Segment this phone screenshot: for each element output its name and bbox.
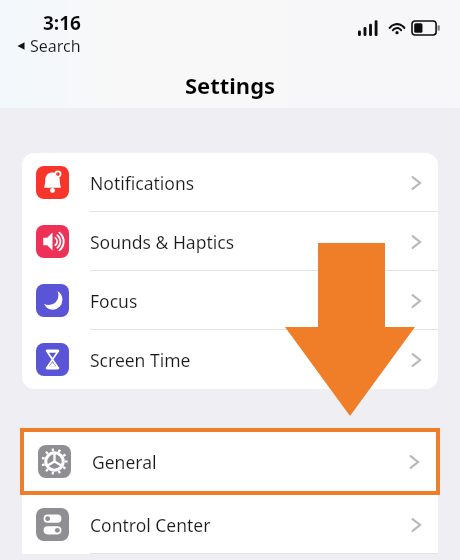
button[interactable]: Sounds & Haptics [22,212,438,271]
button[interactable]: Search [14,34,83,58]
button[interactable]: Notifications [22,153,438,212]
staticText: Control Center [90,513,211,537]
staticText: Sounds & Haptics [90,230,235,254]
button[interactable]: Focus [22,271,438,330]
staticText: Notifications [90,171,195,195]
button[interactable]: General [24,432,436,491]
staticText: Focus [90,289,138,313]
staticText: Search [30,35,81,57]
button[interactable]: Control Center [22,495,438,554]
staticText: Settings [0,70,460,100]
button[interactable]: Screen Time [22,330,438,389]
staticText: General [92,450,157,474]
staticText: 3:16 [43,10,81,36]
staticText: Screen Time [90,348,191,372]
